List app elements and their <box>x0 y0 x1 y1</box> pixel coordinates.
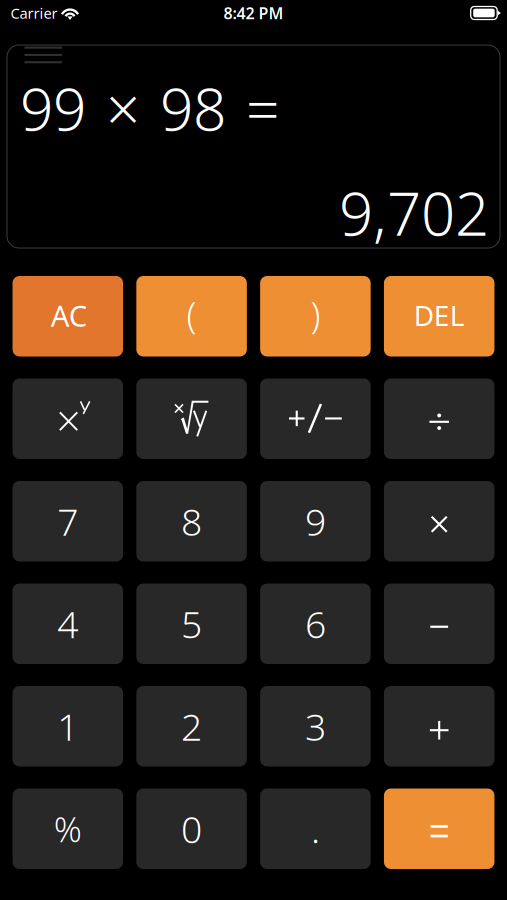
staticText: 2 <box>181 701 202 751</box>
button[interactable]: 3 <box>260 686 371 766</box>
staticText: 4 <box>57 599 78 649</box>
button[interactable]: 4 <box>13 583 123 664</box>
button[interactable]: 1 <box>13 686 123 766</box>
button[interactable]: 9 <box>260 481 371 561</box>
staticText: 1 <box>57 701 78 751</box>
button[interactable]: 7 <box>13 481 123 561</box>
staticText: × <box>106 68 140 148</box>
staticText: . <box>311 804 320 854</box>
button[interactable]: ) <box>260 276 371 356</box>
staticText: 8:42 PM <box>223 2 283 24</box>
button[interactable]: 5 <box>136 583 247 664</box>
button[interactable]: Plus or minus <box>260 378 371 459</box>
staticText: ( <box>187 290 197 338</box>
staticText: 99 <box>20 69 86 147</box>
button[interactable]: 0 <box>136 788 247 869</box>
button[interactable]: 6 <box>260 583 371 664</box>
button[interactable]: Minus <box>384 583 494 664</box>
button[interactable]: Multiply <box>384 481 494 561</box>
staticText: 7 <box>57 496 78 546</box>
staticText: ) <box>310 290 320 338</box>
staticText: 3 <box>305 701 326 751</box>
button[interactable]: ( <box>136 276 247 356</box>
button[interactable]: x to the power of y <box>13 378 123 459</box>
button[interactable]: 8 <box>136 481 247 561</box>
button[interactable]: . <box>260 788 371 869</box>
staticText: 9,702 <box>339 173 489 252</box>
button[interactable]: 2 <box>136 686 247 766</box>
staticText: 8 <box>181 496 202 546</box>
button[interactable]: Equals <box>384 788 494 869</box>
button[interactable]: DEL <box>384 276 494 356</box>
button[interactable]: Divide <box>384 378 494 459</box>
staticText: Carrier <box>10 3 57 23</box>
button[interactable]: x root of y <box>136 378 247 459</box>
staticText: 98 <box>160 69 226 147</box>
staticText: 9 <box>305 496 326 546</box>
staticText: 0 <box>181 804 202 854</box>
staticText: AC <box>51 296 88 335</box>
staticText: 5 <box>181 599 202 649</box>
button[interactable]: % <box>13 788 123 869</box>
staticText: DEL <box>414 297 465 334</box>
button[interactable]: Plus <box>384 686 494 766</box>
staticText: 6 <box>305 599 326 649</box>
staticText: = <box>246 69 279 147</box>
button[interactable]: AC <box>13 276 123 356</box>
staticText: % <box>54 806 82 852</box>
